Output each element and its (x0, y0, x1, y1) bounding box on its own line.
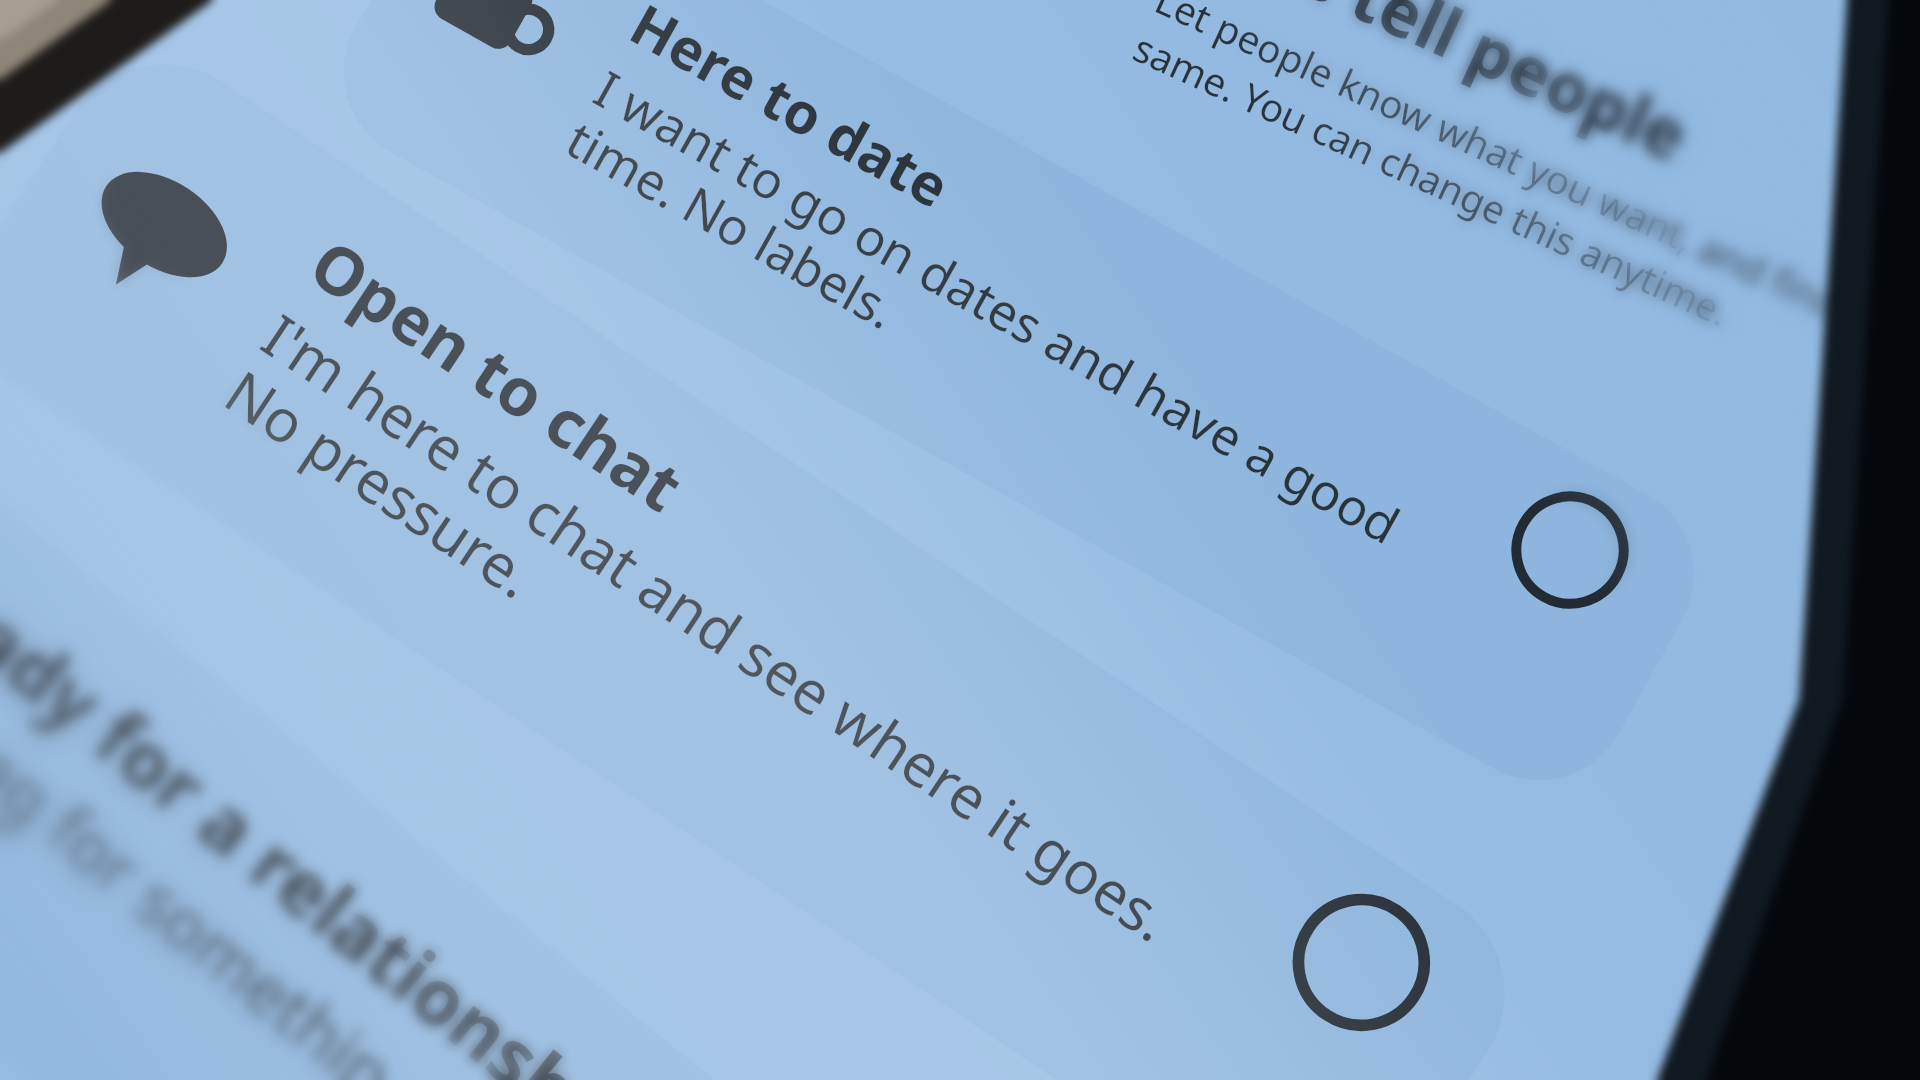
staticText: I want to go on dates and have a good ti… (555, 54, 1459, 636)
staticText: Looking for something serious and long t… (0, 607, 900, 1080)
staticText: I want to go on dates and have a good ti… (555, 54, 1459, 636)
staticText: Here to date (618, 0, 966, 225)
staticText: Let's tell people (1176, 0, 1706, 180)
staticText: Ready for a relationship (0, 521, 664, 1080)
button[interactable]: Here to date (310, 0, 1727, 813)
staticText: I'm here to chat and see where it goes. … (210, 295, 1234, 1046)
staticText: I'm here to chat and see where it goes. … (210, 295, 1234, 1046)
staticText: Looking for something serious and long t… (0, 607, 900, 1080)
staticText: Here to date (618, 0, 966, 225)
staticText: I want to go on dates and have a good ti… (555, 54, 1459, 636)
button[interactable]: Ready for a relationship (0, 272, 1260, 1080)
staticText: Open to chat (295, 217, 703, 531)
staticText: Let's tell people (1176, 0, 1706, 180)
staticText: Ready for a relationship (0, 521, 664, 1080)
button[interactable]: Select Here to date (1489, 469, 1651, 631)
staticText: Here to date (618, 0, 966, 225)
staticText: Ready for a relationship (0, 521, 664, 1080)
staticText: Looking for something serious and long t… (0, 607, 900, 1080)
button[interactable]: Open to chat (0, 23, 1546, 1080)
button[interactable]: Select Open to chat (1265, 866, 1458, 1059)
staticText: Let people know what you want, and find … (1126, 0, 1920, 411)
staticText: Open to chat (295, 217, 703, 531)
staticText: Open to chat (295, 217, 703, 531)
staticText: Let's tell people (1176, 0, 1706, 180)
staticText: I'm here to chat and see where it goes. … (210, 295, 1234, 1046)
staticText: Let people know what you want, and find … (1126, 0, 1920, 411)
staticText: Let people know what you want, and find … (1126, 0, 1920, 411)
